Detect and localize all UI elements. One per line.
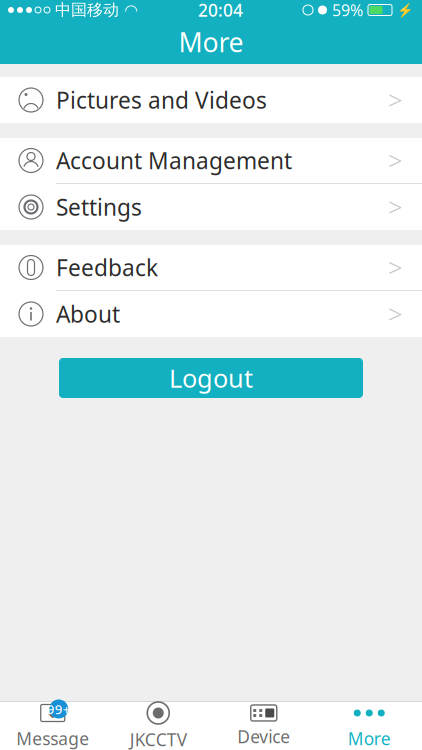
staticText: > bbox=[388, 144, 402, 177]
button[interactable]: More bbox=[0, 20, 422, 64]
staticText: > bbox=[388, 83, 402, 117]
button[interactable]: Settings bbox=[0, 184, 422, 230]
staticText: More bbox=[348, 727, 391, 750]
staticText: > bbox=[388, 297, 402, 331]
staticText: Feedback bbox=[56, 252, 158, 282]
button[interactable]: About bbox=[0, 291, 422, 337]
staticText: 99+ bbox=[47, 700, 71, 718]
staticText: Device bbox=[237, 725, 290, 748]
staticText: 59% bbox=[332, 0, 363, 21]
staticText: JKCCTV bbox=[130, 728, 187, 750]
staticText: Settings bbox=[56, 192, 142, 222]
staticText: Message bbox=[16, 727, 89, 750]
staticText: ◠ bbox=[124, 1, 138, 19]
button[interactable]: JKCCTV bbox=[105, 702, 211, 750]
staticText: ⚡ bbox=[397, 2, 414, 18]
staticText: > bbox=[388, 251, 402, 284]
staticText: Pictures and Videos bbox=[56, 85, 267, 115]
button[interactable]: Device bbox=[211, 702, 316, 750]
button[interactable]: Pictures and Videos bbox=[0, 77, 422, 123]
staticText: About bbox=[56, 299, 120, 329]
staticText: More bbox=[178, 24, 243, 60]
staticText: Logout bbox=[169, 361, 253, 395]
staticText: ⌄ bbox=[44, 698, 62, 723]
button[interactable]: Logout bbox=[59, 358, 363, 398]
button[interactable]: Account Management bbox=[0, 138, 422, 184]
staticText: 20:04 bbox=[198, 0, 243, 21]
button[interactable]: ⌄ bbox=[0, 702, 105, 750]
staticText: > bbox=[388, 190, 402, 224]
staticText: Account Management bbox=[56, 145, 292, 175]
staticText: 中国移动 bbox=[55, 0, 119, 20]
button[interactable]: Feedback bbox=[0, 245, 422, 291]
button[interactable]: More bbox=[316, 702, 422, 750]
